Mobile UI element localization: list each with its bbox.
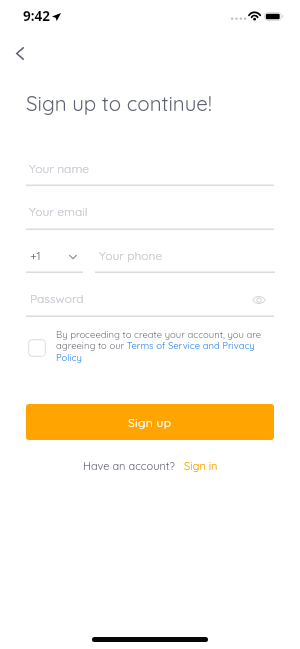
button[interactable]: +1: [30, 248, 77, 263]
button[interactable]: Show password: [247, 288, 271, 312]
button[interactable]: Back: [4, 37, 36, 69]
staticText: 9:42: [23, 7, 50, 25]
button[interactable]: Sign up: [26, 404, 274, 440]
button[interactable]: Accept terms and conditions: [28, 339, 46, 357]
staticText: Your phone: [99, 248, 163, 263]
staticText: Sign in: [184, 459, 218, 473]
staticText: Your name: [29, 161, 90, 176]
staticText: Sign up to continue!: [26, 90, 212, 116]
button[interactable]: Your email: [26, 198, 274, 231]
staticText: Password: [30, 291, 84, 306]
staticText: By proceeding to create your account, yo…: [56, 328, 268, 364]
button[interactable]: Your name: [26, 155, 274, 188]
staticText: Have an account?: [83, 459, 175, 473]
staticText: Your email: [29, 204, 88, 219]
staticText: +1: [30, 248, 41, 263]
button[interactable]: Sign in: [184, 459, 218, 473]
staticText: Sign up: [128, 415, 172, 430]
